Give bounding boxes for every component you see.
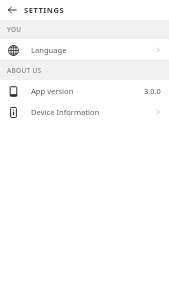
staticText: SETTINGS	[24, 5, 65, 15]
button[interactable]: Language	[0, 39, 169, 60]
staticText: Device Information	[31, 107, 100, 117]
staticText: ABOUT US	[7, 66, 42, 75]
staticText: App version	[31, 86, 74, 96]
staticText: YOU	[7, 25, 22, 34]
staticText: 3.0.0	[144, 86, 161, 96]
button[interactable]: Back	[5, 3, 19, 17]
staticText: Language	[31, 45, 67, 55]
button[interactable]: App version	[0, 80, 169, 101]
button[interactable]: Device Information	[0, 101, 169, 122]
